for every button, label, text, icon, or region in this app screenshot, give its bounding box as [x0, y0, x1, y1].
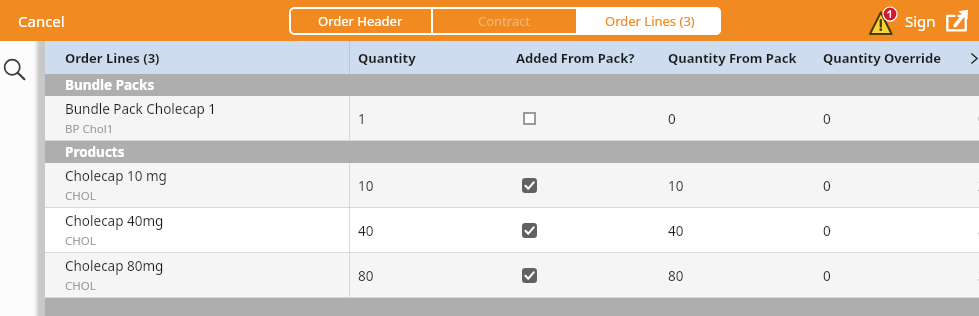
staticText: Added From Pack?	[516, 49, 635, 67]
button[interactable]: Unchecked	[522, 111, 537, 126]
staticText: 0	[823, 110, 831, 128]
staticText: 0	[978, 110, 979, 128]
staticText: 0	[823, 267, 831, 285]
staticText: 40	[668, 222, 684, 240]
staticText: 40	[358, 222, 374, 240]
staticText: CHOL	[65, 188, 96, 204]
staticText: 80	[358, 267, 374, 285]
button[interactable]: Cholecap 80mg	[45, 253, 979, 298]
button[interactable]: Contract	[433, 7, 576, 35]
button[interactable]: Cancel	[14, 7, 69, 35]
staticText: Order Lines (3)	[65, 49, 160, 67]
button[interactable]: Search	[3, 58, 26, 81]
staticText: 10	[358, 177, 374, 195]
button[interactable]: Share	[943, 7, 970, 34]
button[interactable]: Cholecap 10 mg	[45, 163, 979, 208]
staticText: Bundle Pack Cholecap 1	[65, 100, 217, 118]
button[interactable]: Products	[45, 141, 979, 163]
staticText: CHOL	[65, 233, 96, 249]
staticText: Order Lines (3)	[605, 12, 695, 30]
staticText: BP Chol1	[65, 121, 114, 137]
staticText: Contract	[478, 12, 531, 30]
staticText: 0	[823, 222, 831, 240]
staticText: Cholecap 80mg	[65, 257, 164, 275]
button[interactable]: Checked	[522, 268, 537, 283]
staticText: Sign	[905, 11, 936, 31]
button[interactable]: Sign	[903, 11, 938, 31]
staticText: 1	[358, 110, 366, 128]
button[interactable]: Warnings, 1 alert	[868, 5, 899, 36]
staticText: 0	[823, 177, 831, 195]
staticText: Quantity	[358, 49, 416, 67]
button[interactable]: Bundle Pack Cholecap 1	[45, 96, 979, 141]
staticText: Bundle Packs	[65, 76, 155, 94]
button[interactable]: Checked	[522, 178, 537, 193]
button[interactable]: Cholecap 40mg	[45, 208, 979, 253]
button[interactable]: Checked	[522, 223, 537, 238]
staticText: Cholecap 10 mg	[65, 167, 167, 185]
button[interactable]: Order Lines (3)	[578, 7, 721, 35]
staticText: Order Header	[318, 12, 403, 30]
button[interactable]: Order Header	[289, 7, 431, 35]
staticText: Cancel	[18, 11, 65, 31]
staticText: 10	[668, 177, 684, 195]
staticText: Quantity From Pack	[668, 49, 797, 67]
staticText: 80	[668, 267, 684, 285]
staticText: 2	[978, 177, 979, 195]
staticText: 3	[978, 267, 979, 285]
staticText: Products	[65, 143, 125, 161]
button[interactable]: Bundle Packs	[45, 74, 979, 96]
staticText: CHOL	[65, 278, 96, 294]
staticText: 0	[668, 110, 676, 128]
staticText: 8	[978, 222, 979, 240]
staticText: Quantity Override	[823, 49, 941, 67]
staticText: Cholecap 40mg	[65, 212, 164, 230]
